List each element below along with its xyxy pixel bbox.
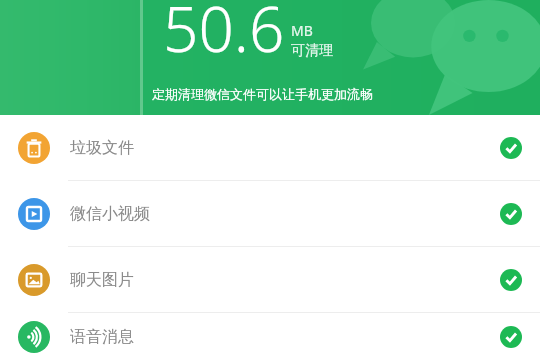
- staticText: MB: [291, 21, 313, 40]
- staticText: 微信小视频: [70, 204, 150, 224]
- button[interactable]: Selected: [500, 326, 522, 348]
- staticText: 可清理: [291, 42, 333, 60]
- staticText: 定期清理微信文件可以让手机更加流畅: [152, 86, 373, 102]
- staticText: 垃圾文件: [70, 138, 134, 158]
- button[interactable]: 微信小视频: [0, 181, 540, 246]
- button[interactable]: 聊天图片: [0, 247, 540, 312]
- staticText: 语音消息: [70, 327, 134, 347]
- button[interactable]: 垃圾文件: [0, 115, 540, 180]
- button[interactable]: 语音消息: [0, 313, 540, 360]
- button[interactable]: Selected: [500, 269, 522, 291]
- button[interactable]: Selected: [500, 137, 522, 159]
- button[interactable]: Selected: [500, 203, 522, 225]
- staticText: 50.6: [163, 0, 285, 70]
- staticText: 聊天图片: [70, 270, 134, 290]
